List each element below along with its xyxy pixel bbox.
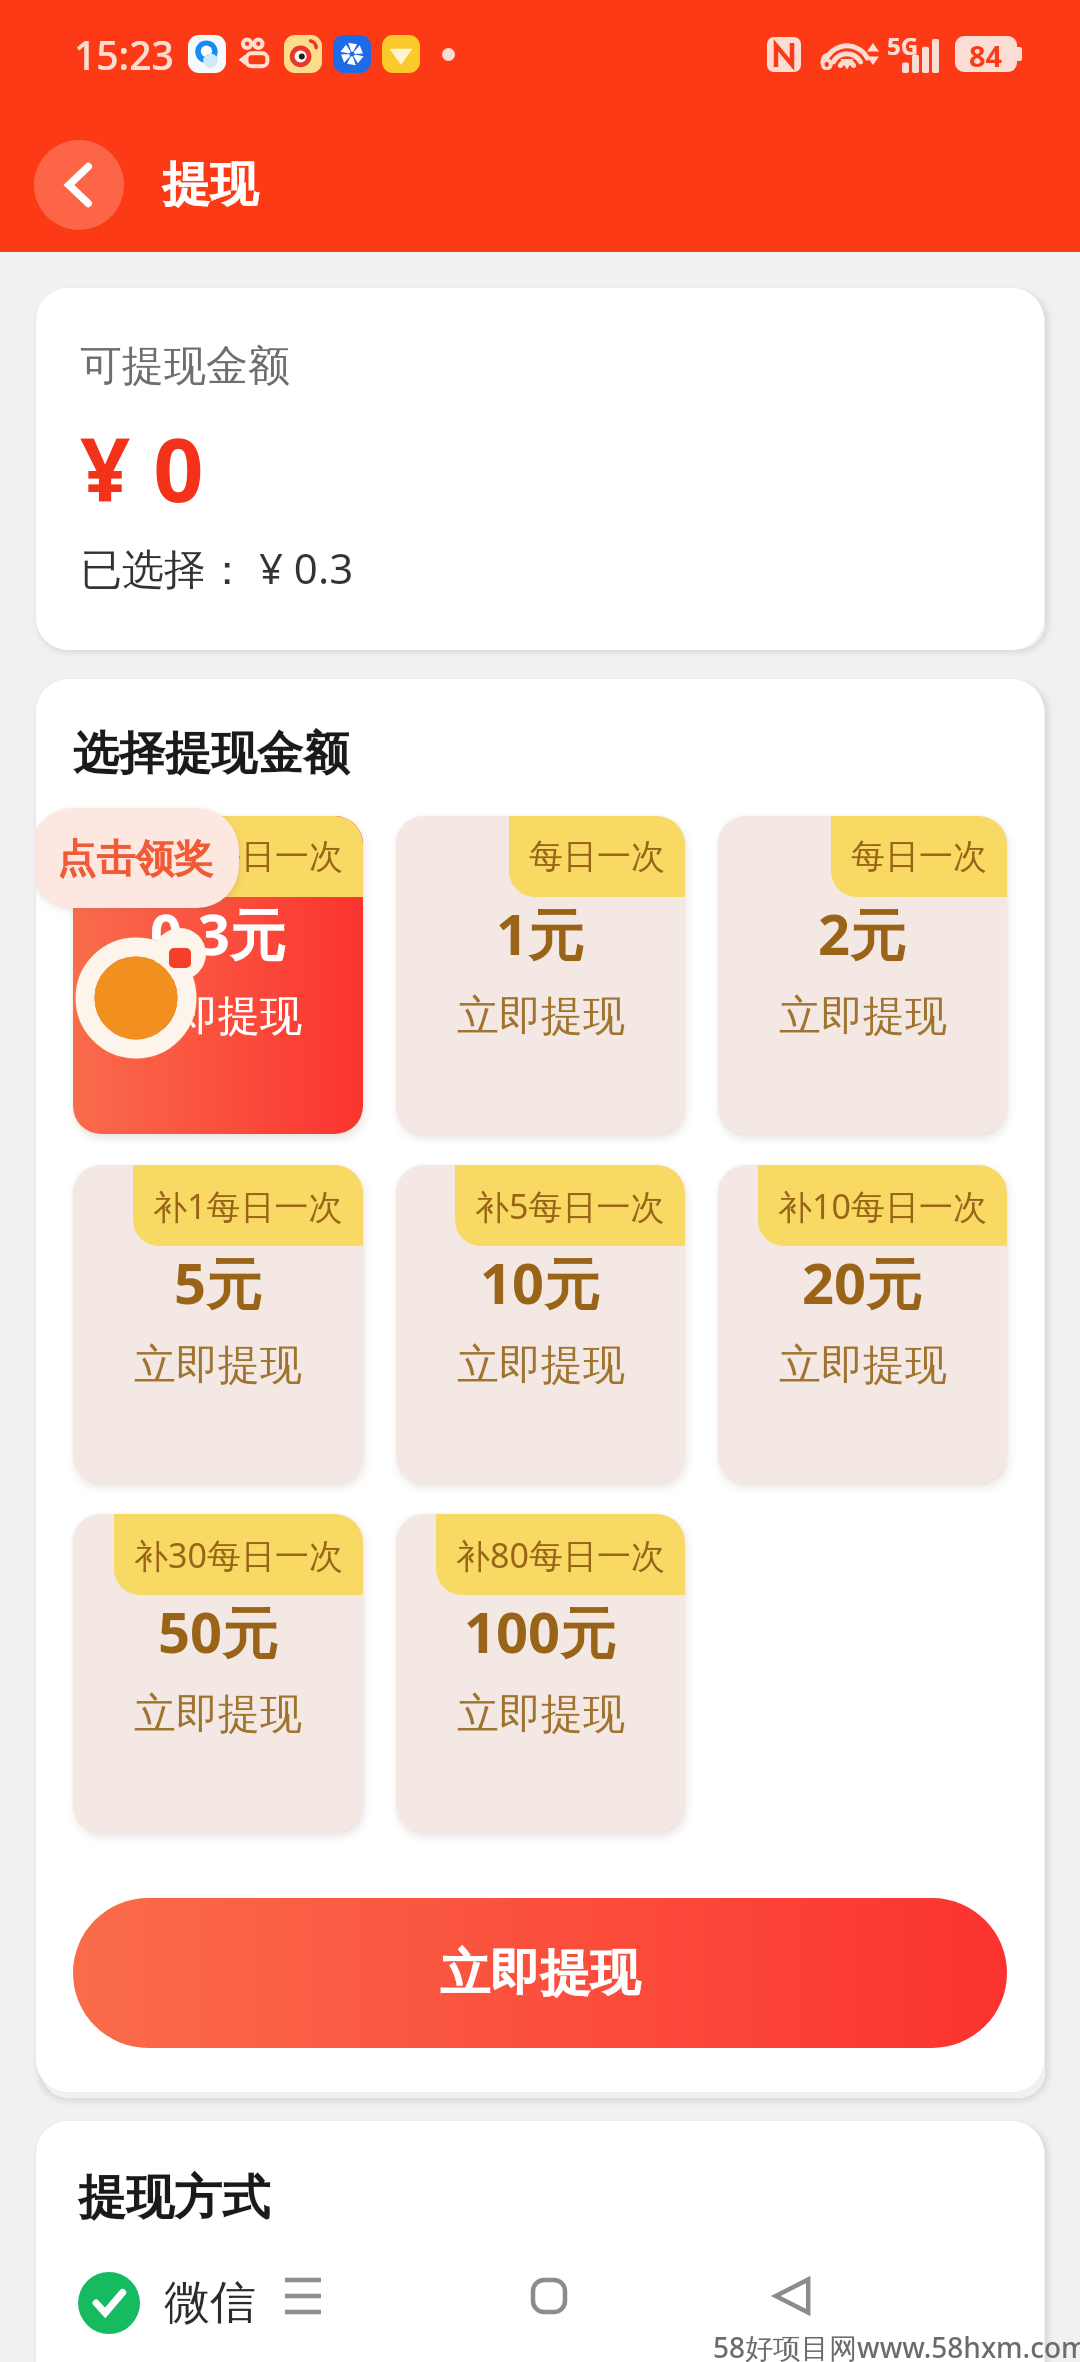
staticText: 立即提现 <box>440 1942 640 2005</box>
staticText: 已选择： ¥ 0.3 <box>80 539 354 596</box>
staticText: 补30每日一次 <box>134 1532 343 1578</box>
staticText: 立即提现 <box>779 1339 947 1392</box>
staticText: 每日一次 <box>851 835 987 878</box>
staticText: 提现 <box>162 155 258 215</box>
staticText: 补10每日一次 <box>778 1183 987 1229</box>
button[interactable]: Back <box>732 2270 852 2322</box>
button[interactable]: Home <box>489 2270 609 2322</box>
button[interactable]: 立即提现 <box>73 1898 1007 2048</box>
staticText: 立即提现 <box>134 1688 302 1741</box>
button[interactable]: 补10每日一次 <box>718 1165 1007 1483</box>
button[interactable]: Back <box>34 140 124 230</box>
staticText: 100元 <box>464 1593 617 1669</box>
staticText: ¥ 0 <box>80 408 204 528</box>
staticText: 6 <box>820 45 834 76</box>
staticText: 选择提现金额 <box>73 725 349 783</box>
button[interactable]: 点击领奖 <box>36 808 239 908</box>
staticText: 15:23 <box>74 28 174 81</box>
staticText: 补1每日一次 <box>153 1183 343 1229</box>
staticText: 10元 <box>480 1244 601 1320</box>
button[interactable]: 补1每日一次 <box>73 1165 363 1483</box>
staticText: 立即提现 <box>779 990 947 1043</box>
staticText: 提现方式 <box>78 2168 270 2228</box>
staticText: 2元 <box>818 895 907 971</box>
button[interactable]: 微信 <box>78 2272 256 2334</box>
staticText: 每日一次 <box>207 835 343 878</box>
staticText: 84 <box>969 36 1003 72</box>
button[interactable]: 每日一次 <box>396 816 685 1134</box>
staticText: 20元 <box>802 1244 923 1320</box>
staticText: 立即提现 <box>457 1339 625 1392</box>
button[interactable]: 补5每日一次 <box>396 1165 685 1483</box>
button[interactable]: Recent apps <box>243 2270 363 2322</box>
staticText: 0.3元 <box>150 895 286 971</box>
button[interactable]: 每日一次 <box>73 816 363 1134</box>
staticText: 5元 <box>174 1244 263 1320</box>
staticText: 50元 <box>158 1593 279 1669</box>
button[interactable]: 补30每日一次 <box>73 1514 363 1832</box>
button[interactable]: 补80每日一次 <box>396 1514 685 1832</box>
staticText: 补80每日一次 <box>456 1532 665 1578</box>
staticText: 每日一次 <box>529 835 665 878</box>
staticText: 58好项目网www.58hxm.com <box>713 2328 1080 2362</box>
staticText: 立即提现 <box>457 990 625 1043</box>
staticText: 补5每日一次 <box>475 1183 665 1229</box>
button[interactable]: 每日一次 <box>718 816 1007 1134</box>
staticText: 立即提现 <box>457 1688 625 1741</box>
staticText: 立即提现 <box>134 1339 302 1392</box>
staticText: 5G <box>887 29 919 62</box>
staticText: 点击领奖 <box>57 834 213 883</box>
staticText: 立即提现 <box>134 990 302 1043</box>
staticText: 可提现金额 <box>80 340 290 393</box>
staticText: 1元 <box>496 895 585 971</box>
staticText: 微信 <box>164 2274 256 2332</box>
